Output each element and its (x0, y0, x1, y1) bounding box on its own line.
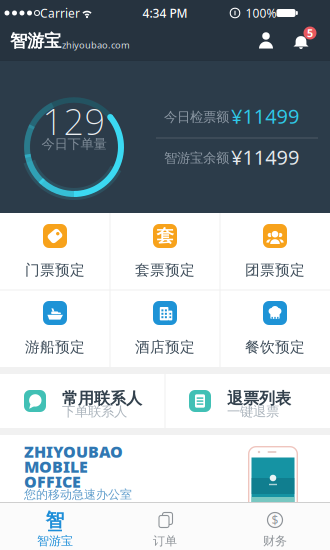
button[interactable]: $ (220, 503, 330, 550)
staticText: 财务 (263, 534, 287, 548)
staticText: 今日检票额 (164, 109, 229, 125)
button[interactable]: Profile (257, 31, 275, 48)
staticText: 酒店预定 (135, 338, 195, 356)
staticText: ZHIYOUBAO (24, 441, 123, 462)
staticText: ¥11499 (231, 144, 299, 170)
staticText: 智 (45, 508, 64, 531)
staticText: 智游宝 (10, 30, 61, 52)
button[interactable]: Notifications (291, 26, 319, 52)
staticText: 4:34 PM (142, 5, 187, 21)
button[interactable]: 套 (110, 213, 220, 290)
button[interactable]: Zhiyoubao mobile office (0, 435, 330, 502)
staticText: 一键退票 (227, 403, 279, 420)
button[interactable]: 酒店预定 (110, 290, 220, 367)
staticText: MOBILE (24, 456, 88, 477)
button[interactable]: 餐饮预定 (220, 290, 330, 367)
button[interactable]: 常用联系人 (0, 374, 165, 428)
staticText: 下单联系人 (62, 403, 127, 420)
staticText: 游船预定 (25, 338, 85, 356)
staticText: 门票预定 (25, 261, 85, 279)
staticText: 智游宝 (37, 534, 73, 548)
staticText: 常用联系人 (62, 389, 142, 408)
staticText: ¥11499 (231, 103, 299, 129)
staticText: 套 (156, 225, 173, 247)
staticText: $ (271, 512, 278, 528)
staticText: 团票预定 (245, 261, 305, 279)
button[interactable]: 团票预定 (220, 213, 330, 290)
button[interactable]: 门票预定 (0, 213, 110, 290)
button[interactable]: 游船预定 (0, 290, 110, 367)
staticText: 智游宝余额 (164, 150, 229, 166)
staticText: Carrier (40, 5, 80, 21)
staticText: 餐饮预定 (245, 338, 305, 356)
staticText: 订单 (153, 534, 177, 548)
staticText: 退票列表 (227, 389, 291, 408)
staticText: zhiyoubao.com (62, 39, 130, 51)
button[interactable]: 退票列表 (165, 374, 330, 428)
staticText: 今日下单量 (41, 136, 106, 152)
button[interactable]: 订单 (110, 503, 220, 550)
staticText: OFFICE (24, 471, 81, 492)
staticText: 129 (42, 97, 105, 145)
staticText: 5 (307, 26, 313, 40)
button[interactable]: 智 (0, 503, 110, 550)
staticText: 100% (245, 5, 276, 21)
staticText: 您的移动急速办公室 (24, 487, 132, 502)
staticText: 套票预定 (135, 261, 195, 279)
